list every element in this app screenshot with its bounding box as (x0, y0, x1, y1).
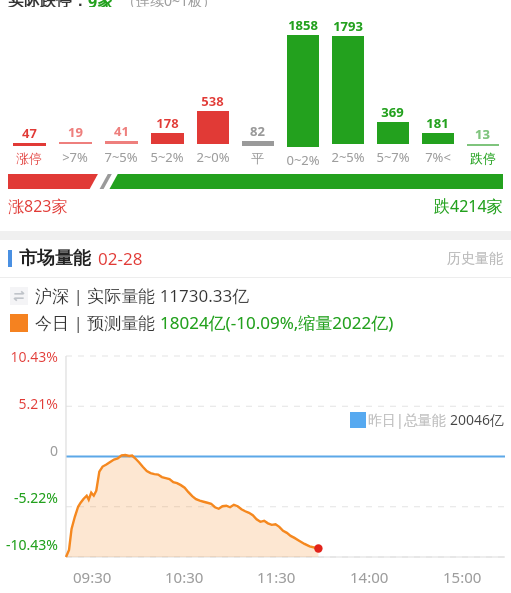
staticText: 市场量能 (19, 247, 91, 270)
staticText: 18024亿(-10.09%,缩量2022亿) (160, 311, 394, 334)
staticText: 沪深 | 实际量能 11730.33亿 (35, 284, 250, 307)
staticText: 今日 | 预测量能 (35, 311, 160, 334)
staticText: 5.21% (0, 394, 58, 413)
staticText: 10:30 (165, 567, 204, 587)
staticText: （连续0~1板） (122, 0, 217, 7)
staticText: -5.22% (0, 488, 58, 507)
staticText: 47 (22, 124, 37, 142)
staticText: 5~7% (376, 148, 410, 166)
staticText: 82 (250, 122, 265, 140)
staticText: 历史量能 (447, 250, 503, 268)
staticText: 1793 (333, 17, 363, 35)
staticText: 7~5% (104, 148, 138, 166)
staticText: 369 (381, 103, 404, 121)
staticText: 昨日|总量能 (368, 410, 450, 429)
staticText: 跌停 (470, 150, 496, 166)
other: 沪深 (10, 287, 28, 305)
staticText: 02-28 (98, 247, 143, 270)
staticText: 20046亿 (450, 410, 505, 429)
button[interactable]: 昨日|总量能 (350, 410, 505, 429)
staticText: 1858 (288, 16, 318, 34)
staticText: 09:30 (73, 567, 112, 587)
staticText: 15:00 (443, 567, 482, 587)
staticText: 实际跌停： (8, 0, 88, 7)
staticText: 9家 (88, 0, 114, 7)
staticText: 11:30 (257, 567, 296, 587)
button[interactable]: 市场量能 (0, 240, 511, 277)
staticText: 5~2% (150, 148, 184, 166)
staticText: 0~2% (286, 151, 320, 168)
staticText: 181 (426, 114, 449, 132)
staticText: 涨停 (16, 150, 42, 166)
staticText: 178 (156, 114, 179, 132)
staticText: -10.43% (0, 535, 58, 554)
staticText: 10.43% (0, 347, 58, 366)
staticText: 2~5% (331, 148, 365, 166)
staticText: 19 (68, 123, 83, 141)
staticText: 跌4214家 (434, 195, 503, 217)
staticText: 13 (475, 125, 490, 143)
staticText: 7%< (425, 148, 451, 166)
staticText: 0 (0, 441, 58, 460)
staticText: 41 (114, 122, 129, 140)
staticText: 涨823家 (8, 195, 68, 217)
staticText: 14:00 (350, 567, 389, 587)
button[interactable] (8, 174, 503, 189)
staticText: >7% (62, 148, 88, 166)
staticText: 平 (251, 150, 264, 166)
staticText: 538 (201, 92, 224, 110)
staticText: 2~0% (196, 148, 230, 166)
